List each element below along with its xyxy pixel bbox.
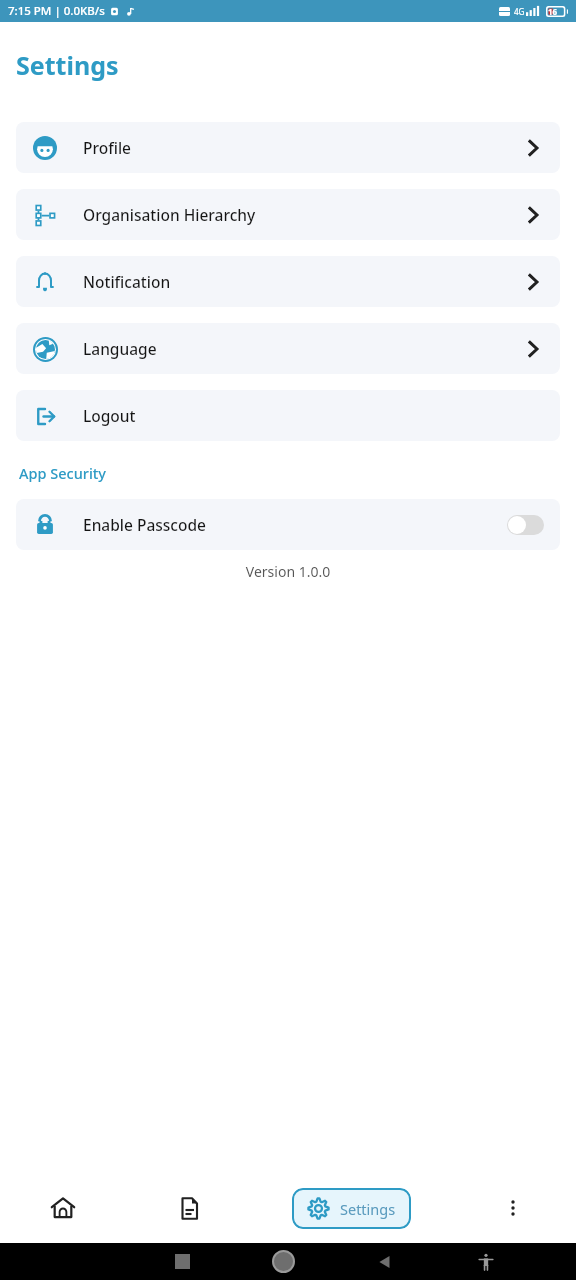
- staticText: Settings: [16, 48, 119, 82]
- button[interactable]: Documents: [126, 1173, 253, 1243]
- button[interactable]: Enable Passcode toggle: [507, 515, 544, 535]
- button[interactable]: Notification: [16, 256, 560, 307]
- staticText: Logout: [83, 405, 136, 426]
- staticText: Language: [83, 338, 157, 359]
- button[interactable]: More options: [449, 1173, 576, 1243]
- staticText: Organisation Hierarchy: [83, 204, 256, 225]
- button[interactable]: Logout: [16, 390, 560, 441]
- staticText: App Security: [19, 463, 107, 483]
- staticText: Profile: [83, 137, 131, 158]
- staticText: Enable Passcode: [83, 514, 206, 535]
- button[interactable]: Language: [16, 323, 560, 374]
- staticText: Version 1.0.0: [0, 562, 576, 581]
- button[interactable]: Profile: [16, 122, 560, 173]
- button[interactable]: Enable Passcode: [16, 499, 560, 550]
- staticText: Settings: [340, 1199, 396, 1219]
- button[interactable]: Settings: [292, 1188, 411, 1229]
- button[interactable]: Organisation Hierarchy: [16, 189, 560, 240]
- button[interactable]: Home: [0, 1173, 126, 1243]
- staticText: 4G: [514, 6, 525, 17]
- staticText: Notification: [83, 271, 171, 292]
- staticText: 7:15 PM | 0.0KB/s: [8, 3, 105, 19]
- staticText: 16: [548, 6, 558, 17]
